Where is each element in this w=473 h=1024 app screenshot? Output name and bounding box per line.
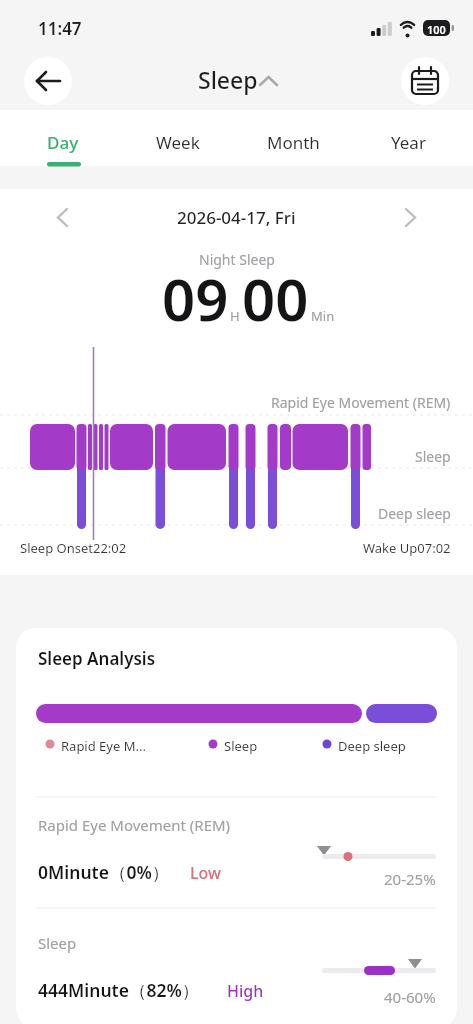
staticText: 20-25% bbox=[384, 869, 436, 889]
staticText: Deep sleep bbox=[338, 737, 406, 755]
staticText: Week bbox=[156, 131, 200, 154]
staticText: Night Sleep bbox=[199, 250, 275, 269]
button[interactable] bbox=[389, 195, 433, 239]
button[interactable]: Year bbox=[363, 118, 453, 166]
staticText: 11:47 bbox=[38, 17, 82, 40]
staticText: 00 bbox=[242, 259, 309, 338]
staticText: Rapid Eye Movement (REM) bbox=[38, 815, 231, 835]
staticText: High bbox=[227, 980, 264, 1002]
staticText: Wake Up07:02 bbox=[363, 539, 451, 557]
staticText: Sleep Onset22:02 bbox=[20, 539, 127, 557]
button[interactable]: Month bbox=[248, 118, 338, 166]
staticText: 444Minute（82%） bbox=[38, 978, 200, 1002]
staticText: 09 bbox=[162, 259, 229, 338]
staticText: Low bbox=[190, 862, 221, 884]
staticText: Year bbox=[391, 131, 426, 154]
staticText: Rapid Eye M... bbox=[61, 737, 146, 755]
button[interactable] bbox=[190, 59, 286, 103]
staticText: Min bbox=[311, 307, 335, 325]
button[interactable] bbox=[40, 195, 84, 239]
staticText: 0Minute（0%） bbox=[38, 860, 170, 884]
staticText: Month bbox=[267, 131, 320, 154]
staticText: Sleep bbox=[415, 447, 451, 466]
button[interactable]: Week bbox=[133, 118, 223, 166]
staticText: Sleep bbox=[224, 737, 258, 755]
button[interactable] bbox=[24, 57, 72, 105]
staticText: Sleep bbox=[198, 64, 258, 95]
button[interactable] bbox=[401, 57, 449, 105]
staticText: Rapid Eye Movement (REM) bbox=[271, 393, 451, 412]
staticText: 100 bbox=[427, 22, 446, 37]
staticText: Sleep Analysis bbox=[38, 647, 156, 670]
staticText: 40-60% bbox=[384, 987, 436, 1007]
staticText: Day bbox=[47, 131, 79, 154]
staticText: Sleep bbox=[38, 933, 77, 953]
staticText: H bbox=[230, 307, 240, 325]
button[interactable]: Day bbox=[18, 118, 108, 166]
staticText: Deep sleep bbox=[378, 504, 451, 523]
staticText: 2026-04-17, Fri bbox=[177, 206, 296, 229]
